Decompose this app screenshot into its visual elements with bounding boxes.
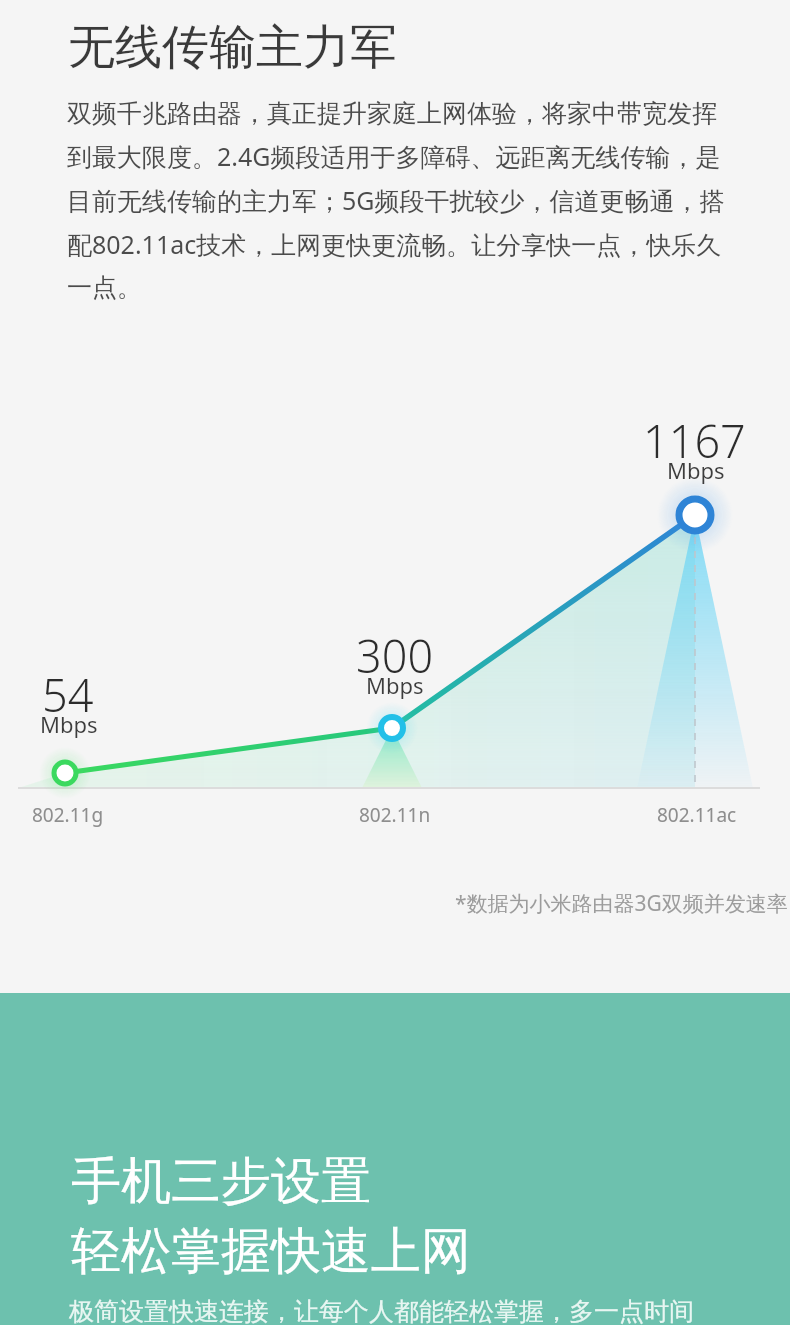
staticText: 双频千兆路由器，真正提升家庭上网体验，将家中带宽发挥到最大限度。2.4G频段适用… [67, 98, 725, 304]
staticText: 802.11n [359, 802, 431, 828]
staticText: 轻松掌握快速上网 [71, 1220, 471, 1283]
staticText: 无线传输主力军 [68, 18, 397, 77]
staticText: 手机三步设置 [71, 1150, 371, 1213]
staticText: *数据为小米路由器3G双频并发速率 [455, 889, 788, 918]
staticText: 54 [42, 664, 94, 725]
staticText: 300 [356, 625, 434, 686]
staticText: Mbps [667, 455, 725, 485]
staticText: 802.11g [32, 802, 104, 828]
staticText: 802.11ac [657, 802, 737, 828]
staticText: Mbps [40, 709, 98, 739]
staticText: 极简设置快速连接，让每个人都能轻松掌握，多一点时间 [69, 1296, 694, 1325]
staticText: Mbps [366, 670, 424, 700]
staticText: 1167 [643, 410, 746, 471]
